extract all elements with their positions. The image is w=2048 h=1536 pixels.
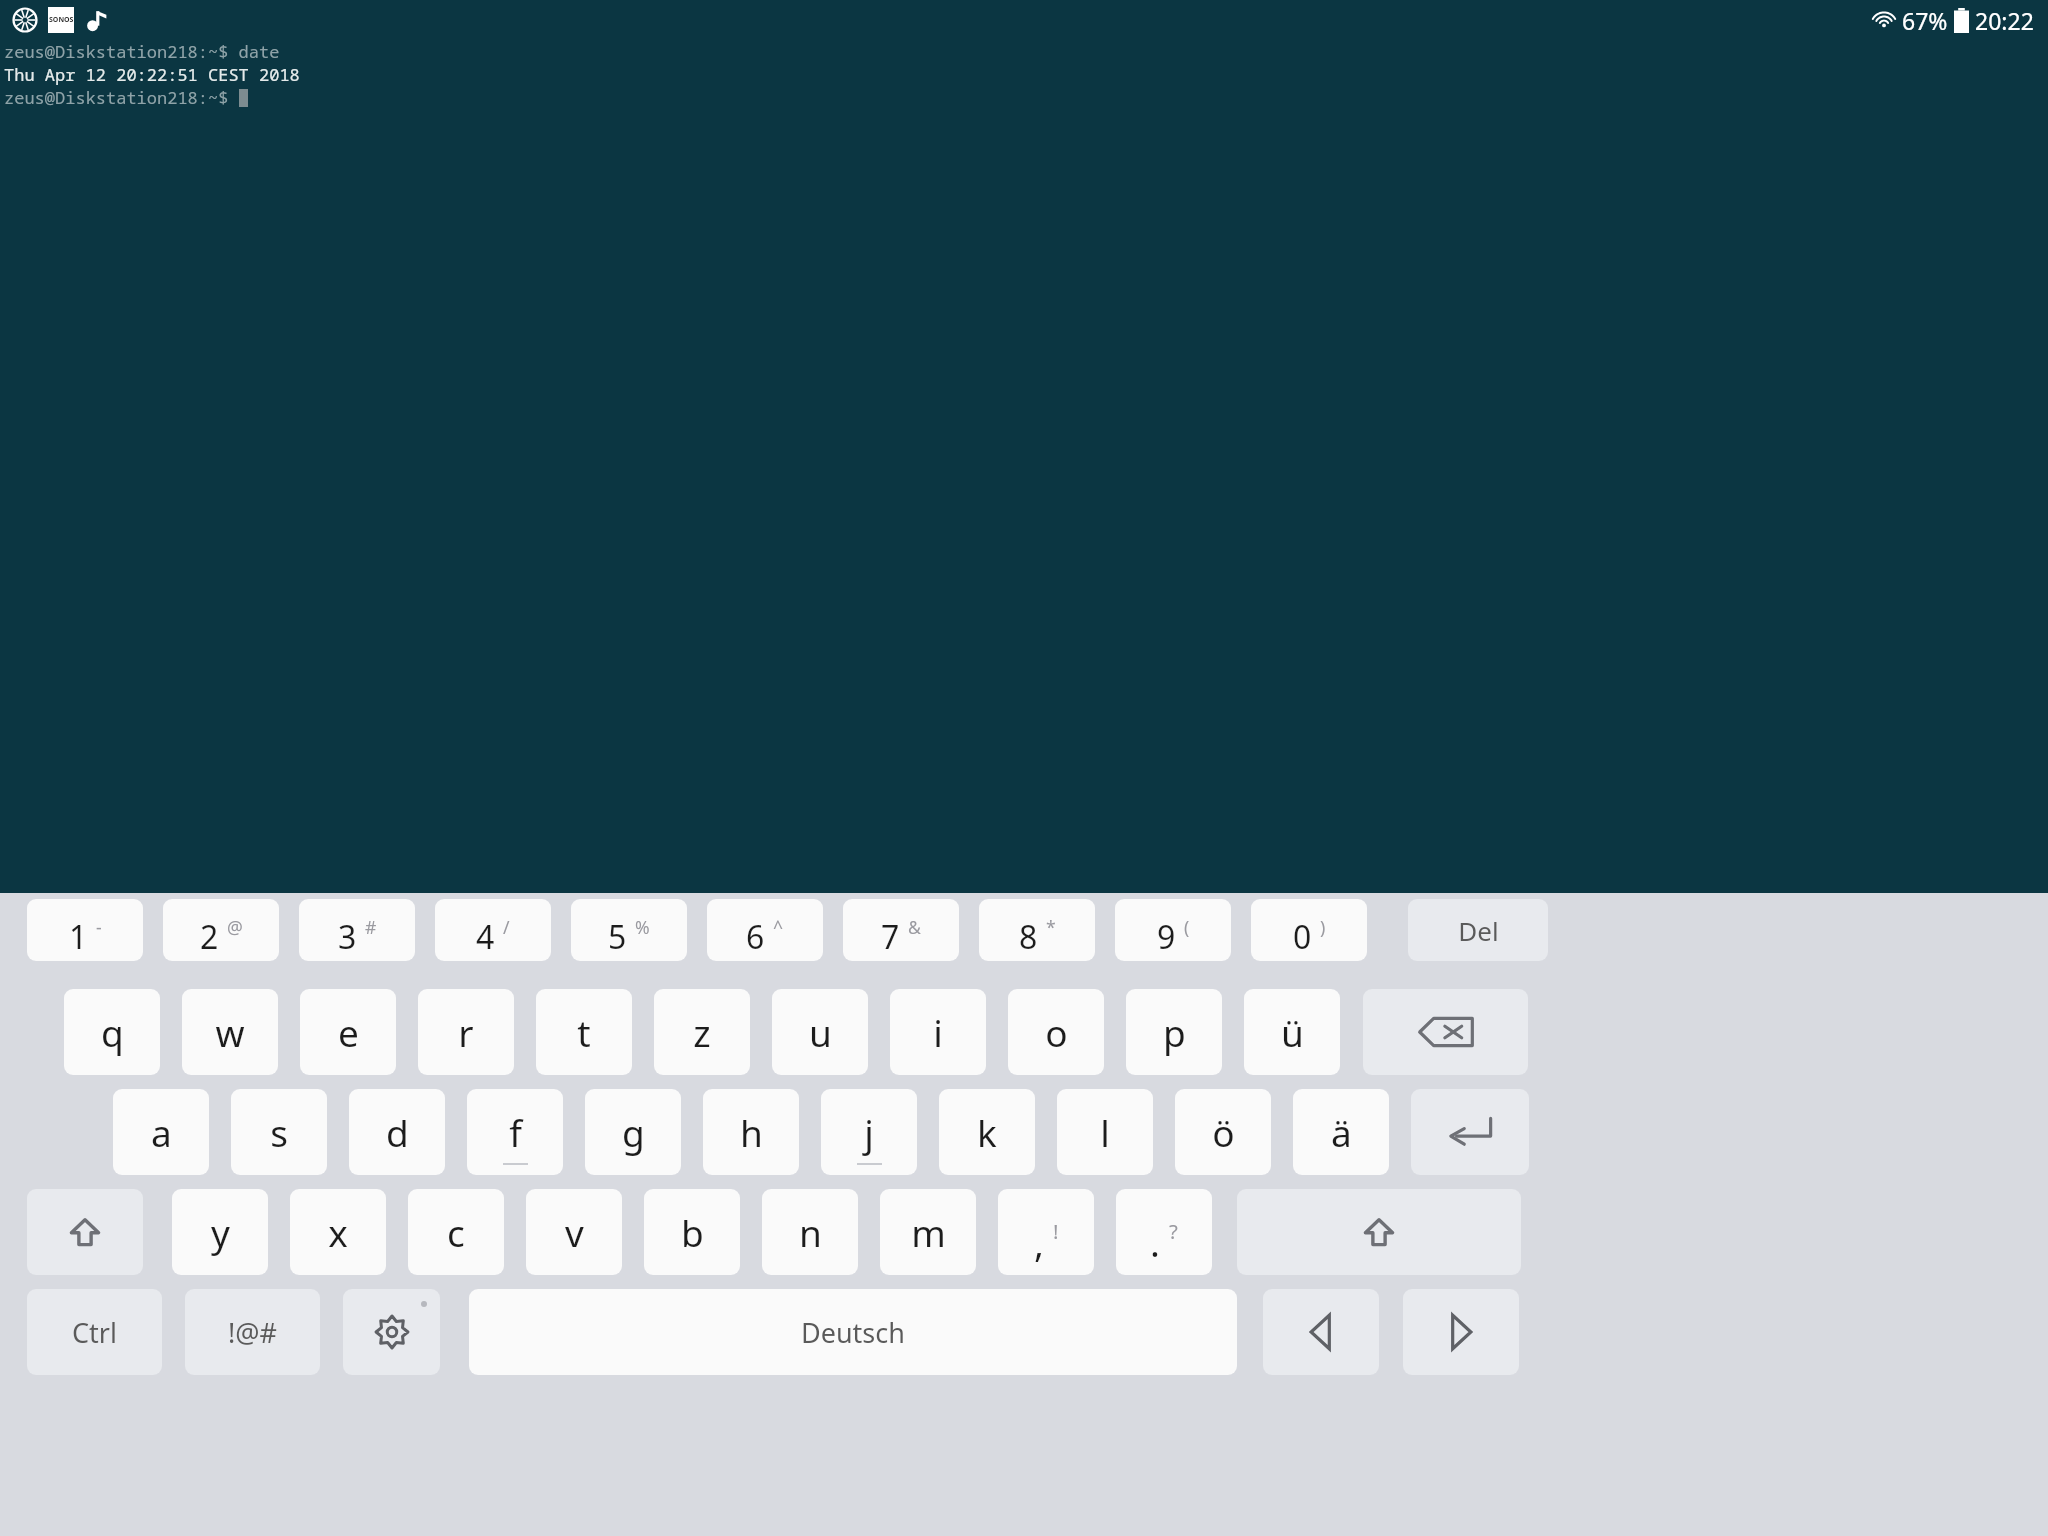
staticText: 5	[608, 915, 627, 959]
staticText: e	[338, 1007, 359, 1057]
button[interactable]: v	[526, 1189, 622, 1275]
staticText: 2	[200, 915, 219, 959]
button[interactable]: x	[290, 1189, 386, 1275]
staticText: y	[211, 1207, 230, 1257]
staticText: 7	[881, 915, 900, 959]
button[interactable]: h	[703, 1089, 799, 1175]
staticText: !	[1053, 1217, 1059, 1245]
staticText: t	[577, 1007, 591, 1057]
button[interactable]: ü	[1244, 989, 1340, 1075]
button[interactable]: k	[939, 1089, 1035, 1175]
button[interactable]: g	[585, 1089, 681, 1175]
staticText: m	[911, 1207, 946, 1257]
button[interactable]: 5	[571, 899, 687, 961]
staticText: (	[1184, 915, 1190, 939]
button[interactable]: Shift	[1237, 1189, 1521, 1275]
staticText: Deutsch	[801, 1314, 905, 1351]
staticText: #	[365, 915, 377, 939]
button[interactable]: q	[64, 989, 160, 1075]
button[interactable]: .	[1116, 1189, 1212, 1275]
staticText: o	[1045, 1007, 1068, 1057]
button[interactable]: Deutsch	[469, 1289, 1237, 1375]
staticText: Thu Apr 12 20:22:51 CEST 2018	[4, 63, 300, 86]
staticText: n	[799, 1207, 822, 1257]
staticText: q	[101, 1007, 124, 1057]
button[interactable]: n	[762, 1189, 858, 1275]
staticText: 67%	[1902, 5, 1948, 36]
staticText: ö	[1212, 1107, 1235, 1157]
button[interactable]: 8	[979, 899, 1095, 961]
button[interactable]: r	[418, 989, 514, 1075]
staticText: i	[933, 1007, 943, 1057]
staticText: j	[864, 1107, 874, 1157]
button[interactable]: 3	[299, 899, 415, 961]
button[interactable]: Cursor right	[1403, 1289, 1519, 1375]
button[interactable]: y	[172, 1189, 268, 1275]
button[interactable]: c	[408, 1189, 504, 1275]
button[interactable]: Backspace	[1363, 989, 1528, 1075]
staticText: 0	[1293, 915, 1312, 959]
staticText: -	[96, 915, 102, 939]
staticText: Ctrl	[72, 1314, 117, 1351]
staticText: ü	[1281, 1007, 1304, 1057]
staticText: b	[681, 1207, 704, 1257]
button[interactable]: Del	[1408, 899, 1548, 961]
button[interactable]: 9	[1115, 899, 1231, 961]
staticText: l	[1100, 1107, 1110, 1157]
staticText: h	[740, 1107, 763, 1157]
button[interactable]: ,	[998, 1189, 1094, 1275]
staticText: %	[635, 915, 650, 939]
staticText: /	[503, 915, 510, 939]
button[interactable]: m	[880, 1189, 976, 1275]
button[interactable]: 4	[435, 899, 551, 961]
staticText: g	[622, 1107, 645, 1157]
staticText: 3	[338, 915, 357, 959]
button[interactable]: u	[772, 989, 868, 1075]
button[interactable]: p	[1126, 989, 1222, 1075]
button[interactable]: s	[231, 1089, 327, 1175]
staticText: zeus@Diskstation218:~$	[4, 86, 239, 109]
staticText: zeus@Diskstation218:~$ date	[4, 40, 280, 63]
staticText: c	[447, 1207, 465, 1257]
button[interactable]: 1	[27, 899, 143, 961]
button[interactable]: 7	[843, 899, 959, 961]
button[interactable]: l	[1057, 1089, 1153, 1175]
staticText: f	[509, 1107, 522, 1157]
staticText: a	[151, 1107, 172, 1157]
button[interactable]: i	[890, 989, 986, 1075]
button[interactable]: j	[821, 1089, 917, 1175]
button[interactable]: t	[536, 989, 632, 1075]
staticText: k	[977, 1107, 997, 1157]
button[interactable]: Shift	[27, 1189, 143, 1275]
button[interactable]: 0	[1251, 899, 1367, 961]
button[interactable]: 2	[163, 899, 279, 961]
staticText: 4	[476, 915, 495, 959]
button[interactable]: 6	[707, 899, 823, 961]
button[interactable]: z	[654, 989, 750, 1075]
button[interactable]: !@#	[185, 1289, 320, 1375]
button[interactable]: b	[644, 1189, 740, 1275]
staticText: )	[1320, 915, 1326, 939]
button[interactable]: d	[349, 1089, 445, 1175]
button[interactable]: w	[182, 989, 278, 1075]
button[interactable]: Enter	[1411, 1089, 1529, 1175]
button[interactable]: e	[300, 989, 396, 1075]
button[interactable]: ä	[1293, 1089, 1389, 1175]
staticText: z	[693, 1007, 711, 1057]
staticText: Del	[1458, 913, 1499, 948]
button[interactable]: a	[113, 1089, 209, 1175]
button[interactable]: Cursor left	[1263, 1289, 1379, 1375]
staticText: d	[386, 1107, 409, 1157]
button[interactable]: ö	[1175, 1089, 1271, 1175]
button[interactable]: f	[467, 1089, 563, 1175]
staticText: ^	[773, 915, 784, 939]
staticText: u	[809, 1007, 832, 1057]
staticText: SONOS	[49, 15, 74, 25]
button[interactable]: Keyboard settings	[343, 1289, 440, 1375]
staticText: 9	[1157, 915, 1176, 959]
staticText: s	[270, 1107, 288, 1157]
staticText: ?	[1169, 1217, 1178, 1245]
staticText: @	[227, 915, 243, 939]
button[interactable]: o	[1008, 989, 1104, 1075]
button[interactable]: Ctrl	[27, 1289, 162, 1375]
